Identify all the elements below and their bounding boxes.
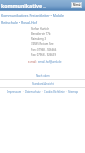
staticText: Stefan Hurtich (31, 27, 50, 31)
staticText: Kommunikatives Freizeitleiter • Mobile (1, 13, 65, 18)
button[interactable]: Sitemap (68, 90, 79, 94)
staticText: email.hof@web.de (38, 60, 62, 64)
staticText: Standard-Ansicht (32, 82, 54, 86)
staticText: e-mail: (28, 60, 38, 64)
staticText: Rainsberg 3 (31, 37, 46, 41)
staticText: · (22, 90, 25, 94)
button[interactable]: e-mail: (28, 60, 62, 64)
button[interactable]: Datenschutz (25, 90, 41, 94)
button[interactable]: Nach oben (0, 73, 85, 78)
staticText: · (65, 90, 68, 94)
button[interactable]: Impressum (7, 90, 22, 94)
staticText: ... (43, 4, 46, 9)
staticText: 74585 Rot am See (31, 42, 54, 46)
staticText: Nach oben (36, 74, 50, 78)
staticText: Menü (73, 3, 81, 7)
button[interactable]: Standard-Ansicht (0, 81, 85, 86)
button[interactable]: Cookie-Richtlinie (44, 90, 65, 94)
staticText: Fon: 07968 - 926666 (31, 48, 57, 52)
staticText: Fax: 07968 - 926639 (31, 53, 56, 57)
staticText: Reitschule • Rosal-Hof (1, 20, 37, 25)
staticText: Benatlerstr 77b (31, 32, 51, 36)
staticText: · (41, 90, 44, 94)
staticText: kommunikative (1, 2, 43, 9)
button[interactable]: Menü (71, 2, 82, 8)
